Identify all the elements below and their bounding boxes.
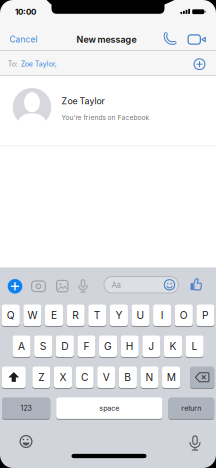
staticText: H <box>126 340 134 352</box>
button[interactable]: Shift <box>2 365 26 389</box>
button[interactable]: L <box>185 334 204 358</box>
button[interactable]: Y <box>110 303 128 327</box>
staticText: E <box>51 309 57 321</box>
staticText: D <box>61 340 68 352</box>
staticText: T <box>94 309 101 321</box>
button[interactable]: C <box>76 365 94 389</box>
staticText: K <box>169 340 176 352</box>
button[interactable]: T <box>88 303 106 327</box>
staticText: space <box>99 404 119 412</box>
button[interactable]: Audio call <box>161 31 177 47</box>
staticText: U <box>136 309 144 321</box>
staticText: F <box>83 340 89 352</box>
staticText: A <box>18 340 25 352</box>
button[interactable]: Q <box>2 303 20 327</box>
button[interactable]: E <box>45 303 63 327</box>
button[interactable]: Send like <box>188 277 204 293</box>
staticText: C <box>81 371 88 383</box>
button[interactable]: Zoe Taylor <box>0 76 216 146</box>
button[interactable]: A <box>12 334 31 358</box>
button[interactable]: N <box>140 365 158 389</box>
button[interactable]: Emoji <box>19 434 33 448</box>
button[interactable]: 123 <box>2 396 50 420</box>
staticText: B <box>124 371 131 383</box>
staticText: L <box>192 340 198 352</box>
button[interactable]: X <box>54 365 72 389</box>
staticText: To: <box>8 60 18 68</box>
button[interactable]: R <box>67 303 85 327</box>
button[interactable]: B <box>119 365 137 389</box>
button[interactable]: I <box>153 303 171 327</box>
button[interactable]: W <box>23 303 41 327</box>
button[interactable]: J <box>142 334 160 358</box>
staticText: 123 <box>21 404 32 412</box>
staticText: 10:00 <box>15 7 36 17</box>
staticText: O <box>180 309 188 321</box>
button[interactable]: G <box>99 334 117 358</box>
staticText: N <box>145 371 153 383</box>
staticText: X <box>59 371 66 383</box>
button[interactable]: Dictation <box>188 435 202 452</box>
staticText: Y <box>115 309 122 321</box>
button[interactable]: More actions <box>8 279 22 294</box>
button[interactable]: H <box>121 334 139 358</box>
staticText: I <box>161 309 164 321</box>
button[interactable]: F <box>77 334 95 358</box>
button[interactable]: K <box>164 334 182 358</box>
staticText: J <box>148 340 154 352</box>
staticText: Z <box>38 371 44 383</box>
button[interactable]: Z <box>32 365 50 389</box>
button[interactable]: Cancel <box>9 35 37 45</box>
button[interactable]: M <box>162 365 180 389</box>
button[interactable]: Voice message <box>77 279 89 294</box>
button[interactable]: O <box>175 303 193 327</box>
button[interactable]: return <box>168 396 214 420</box>
staticText: Aa <box>111 280 120 290</box>
button[interactable]: Video call <box>187 32 207 46</box>
staticText: Zoe Taylor, <box>21 60 57 68</box>
button[interactable]: Camera <box>30 280 46 293</box>
button[interactable]: U <box>131 303 150 327</box>
staticText: Q <box>7 309 15 321</box>
staticText: R <box>72 309 79 321</box>
staticText: W <box>27 309 37 321</box>
staticText: New message <box>76 34 136 45</box>
staticText: V <box>103 371 110 383</box>
button[interactable]: Delete <box>190 365 214 389</box>
button[interactable]: Add contact <box>193 58 206 71</box>
button[interactable]: space <box>56 396 162 420</box>
staticText: return <box>181 404 201 412</box>
button[interactable]: P <box>196 303 214 327</box>
staticText: G <box>104 340 112 352</box>
button[interactable]: V <box>97 365 115 389</box>
staticText: M <box>167 371 176 383</box>
button[interactable]: S <box>34 334 52 358</box>
staticText: P <box>202 309 209 321</box>
button[interactable]: Photos <box>56 280 69 293</box>
staticText: You're friends on Facebook <box>61 113 149 121</box>
button[interactable]: Message field <box>103 276 179 294</box>
staticText: S <box>40 340 47 352</box>
staticText: Cancel <box>9 35 37 45</box>
button[interactable]: D <box>56 334 74 358</box>
staticText: Zoe Taylor <box>61 96 104 106</box>
